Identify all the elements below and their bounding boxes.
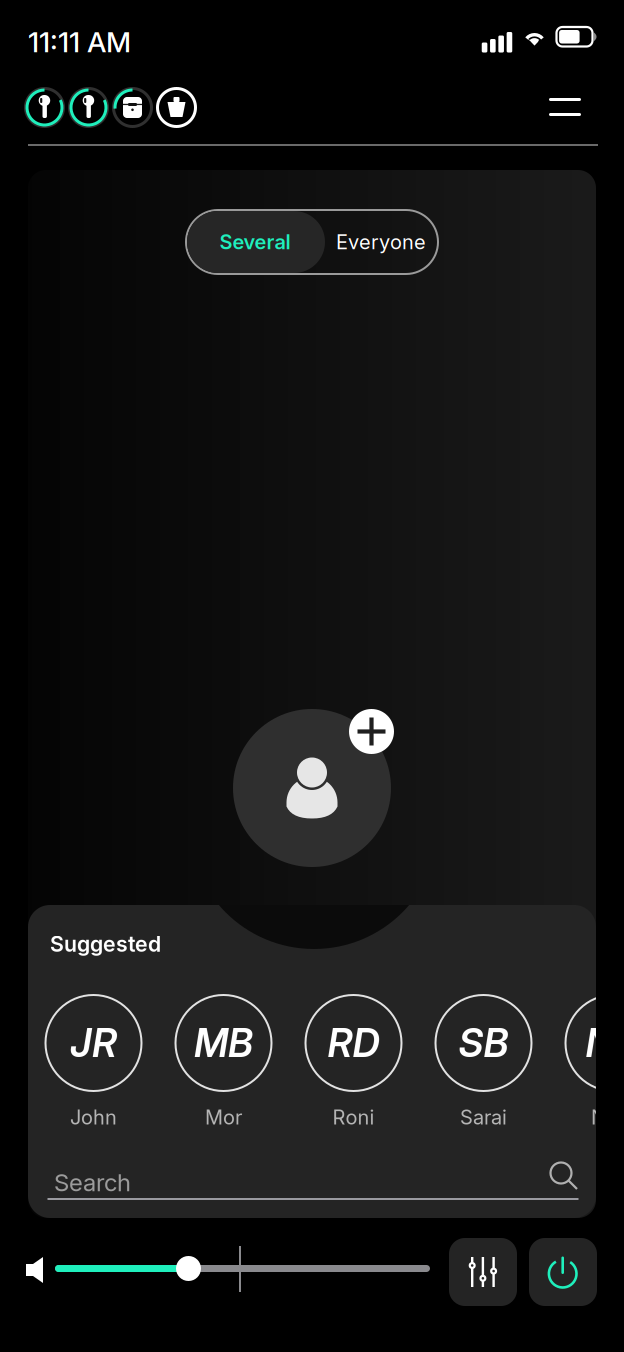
button[interactable]: Search <box>44 1163 578 1207</box>
button[interactable]: Menu <box>533 84 597 130</box>
button[interactable]: NC <box>564 995 624 1129</box>
button[interactable]: JR <box>44 995 142 1129</box>
staticText: SB <box>458 1020 508 1066</box>
staticText: 11:11 AM <box>28 25 131 59</box>
button[interactable]: Power <box>529 1238 597 1306</box>
staticText: Nora <box>591 1105 624 1129</box>
button[interactable]: Add person <box>349 709 394 754</box>
staticText: Roni <box>332 1105 374 1129</box>
button[interactable]: Remove device <box>157 88 196 127</box>
button[interactable]: Battery level <box>69 88 108 127</box>
button[interactable]: SB <box>434 995 532 1129</box>
staticText: John <box>70 1105 117 1129</box>
button[interactable]: MB <box>174 995 272 1129</box>
staticText: RD <box>327 1020 379 1066</box>
button[interactable]: Everyone <box>324 210 438 274</box>
button[interactable]: Battery level <box>113 88 152 127</box>
button[interactable]: Battery level <box>25 88 64 127</box>
staticText: Several <box>219 230 290 254</box>
staticText: Sarai <box>460 1105 507 1129</box>
staticText: JR <box>70 1020 117 1066</box>
button[interactable]: Adjust settings <box>449 1238 517 1306</box>
staticText: Mor <box>205 1105 242 1129</box>
staticText: NC <box>585 1020 624 1066</box>
button[interactable]: RD <box>304 995 402 1129</box>
staticText: MB <box>194 1020 253 1066</box>
button[interactable]: Several <box>186 210 324 274</box>
staticText: Search <box>54 1168 131 1197</box>
staticText: Suggested <box>50 931 161 957</box>
staticText: Everyone <box>336 230 426 254</box>
button[interactable]: Profile <box>233 709 391 867</box>
